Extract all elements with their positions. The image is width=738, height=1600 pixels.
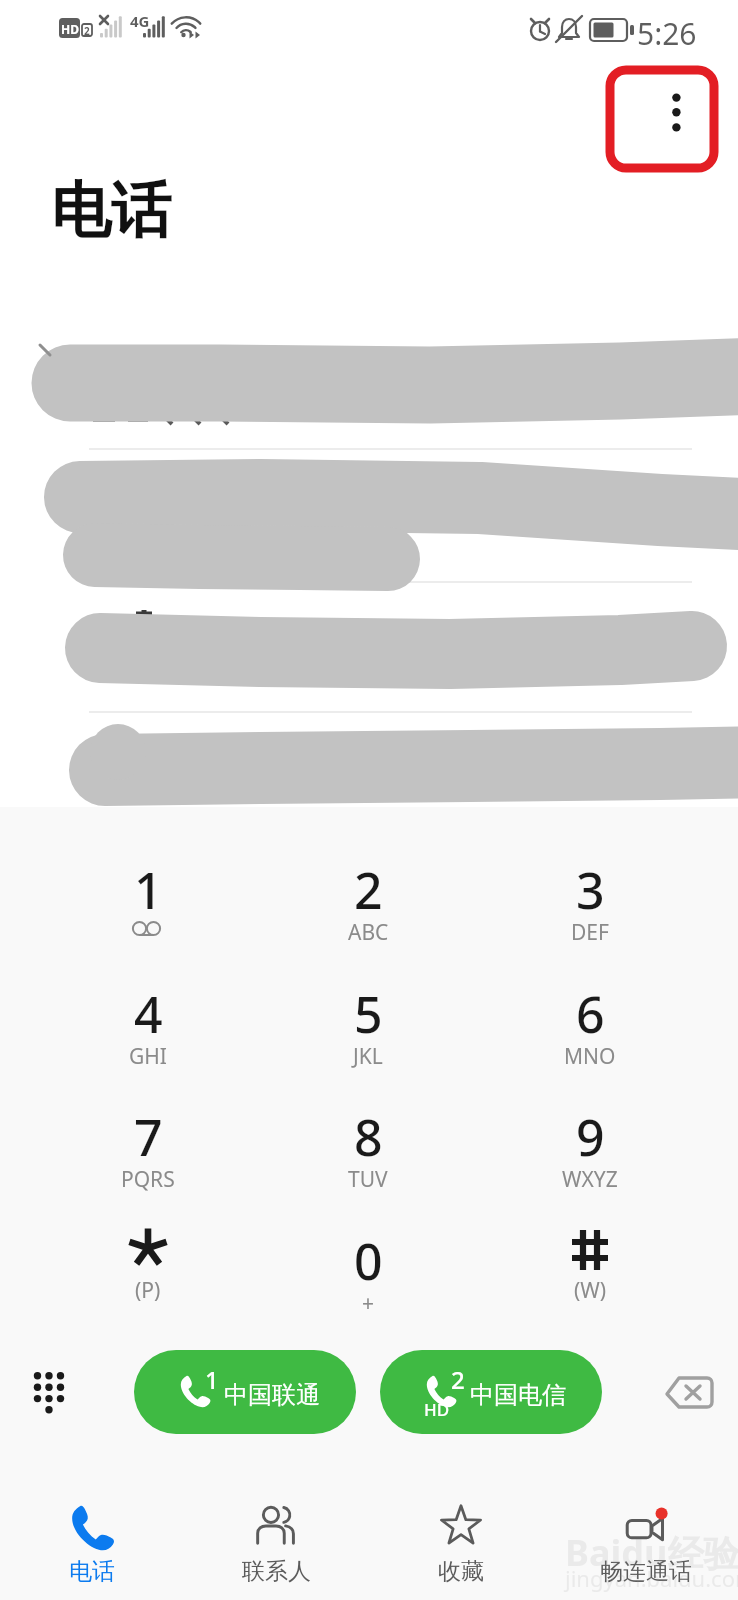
staticText: HD [424,1398,450,1421]
staticText: GHI [129,1042,167,1071]
staticText: 电话 [69,1557,115,1586]
staticText: 4 [134,980,163,1048]
staticText: TUV [348,1165,388,1194]
staticText: (P) [135,1276,161,1305]
staticText: 9 [576,1103,605,1171]
button[interactable]: 8 [262,1103,474,1219]
button[interactable]: 6 [484,980,696,1096]
button[interactable]: 3 [484,856,696,972]
staticText: 4G [130,11,150,31]
staticText: 2 [84,24,90,38]
staticText: 0 [354,1227,383,1295]
staticText: 7 [134,1103,163,1171]
staticText: HD [61,21,79,37]
staticText: 5 [354,980,383,1048]
staticText: MNO [564,1042,616,1071]
button[interactable]: 9 [484,1103,696,1219]
staticText: 6 [576,980,605,1048]
button[interactable]: (W) [484,1227,696,1343]
button[interactable]: Hide keypad [20,1360,80,1422]
button[interactable]: 0 [262,1227,474,1343]
button[interactable]: (P) [42,1227,254,1343]
button[interactable]: 7 [42,1103,254,1219]
button[interactable]: 1 [42,856,254,972]
staticText: Baidu经验 [565,1528,738,1577]
button[interactable]: 畅连通话 [553,1470,738,1600]
button[interactable]: 1 [134,1350,356,1434]
button[interactable]: 4 [42,980,254,1096]
button[interactable]: 2 [262,856,474,972]
staticText: 中国联通 [224,1380,320,1410]
staticText: 联系人 [242,1557,311,1586]
staticText: 畅连通话 [600,1557,692,1586]
button[interactable]: 收藏 [368,1470,553,1600]
staticText: 收藏 [438,1557,484,1586]
staticText: jingyan.baidu.com [565,1563,738,1593]
staticText: 8 [354,1103,383,1171]
staticText: ABC [348,918,389,947]
button[interactable]: More options [606,66,718,172]
button[interactable]: 联系人 [184,1470,368,1600]
staticText: 2 [354,856,383,924]
staticText: WXYZ [562,1165,618,1194]
button[interactable]: 2 [380,1350,602,1434]
staticText: PQRS [121,1165,175,1194]
staticText: JKL [353,1042,383,1071]
staticText: 1 [134,856,163,924]
staticText: 1 [205,1363,219,1396]
staticText: DEF [571,918,609,947]
button[interactable]: 5 [262,980,474,1096]
staticText: 5:26 [637,13,697,54]
staticText: 电话 [51,173,171,249]
button[interactable]: 电话 [0,1470,184,1600]
staticText: + [362,1289,375,1318]
staticText: (W) [574,1276,607,1305]
staticText: 2 [451,1363,465,1396]
staticText: 3 [576,856,605,924]
button[interactable]: Delete [657,1367,721,1417]
staticText: 中国电信 [470,1380,566,1410]
